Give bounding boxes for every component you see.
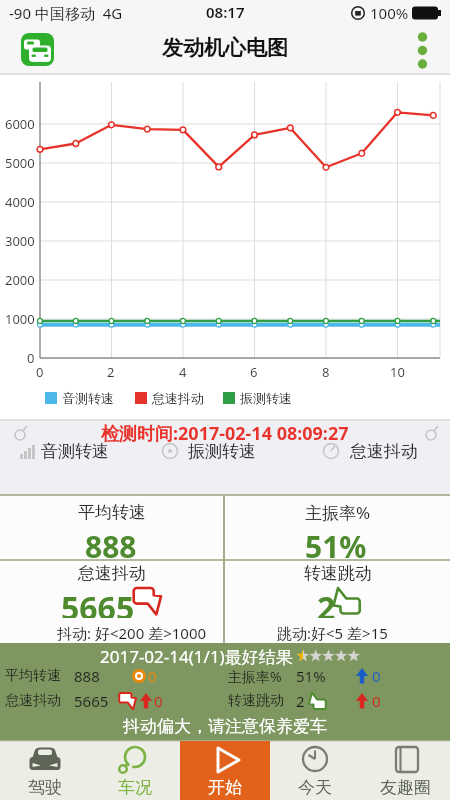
button[interactable]: 今天 bbox=[270, 741, 360, 800]
staticText: 抖动: 好<200 差>1000 bbox=[57, 623, 207, 643]
staticText: 发动机心电图 bbox=[162, 35, 288, 61]
staticText: 100% bbox=[370, 3, 409, 23]
staticText: 0 bbox=[372, 691, 381, 711]
staticText: 今天 bbox=[298, 777, 332, 798]
staticText: 5000 bbox=[5, 154, 35, 172]
staticText: 2 bbox=[107, 363, 115, 381]
staticText: 2017-02-14(1/1)最好结果 bbox=[100, 645, 293, 668]
staticText: 3000 bbox=[5, 232, 35, 250]
staticText: 2000 bbox=[5, 271, 35, 289]
staticText: 平均转速 bbox=[5, 667, 61, 685]
staticText: 跳动:好<5 差>15 bbox=[277, 623, 388, 643]
staticText: 08:17 bbox=[206, 2, 245, 22]
staticText: 6 bbox=[250, 363, 258, 381]
staticText: 转速跳动 bbox=[228, 692, 284, 710]
staticText: 开始 bbox=[208, 777, 242, 798]
staticText: 主振率% bbox=[228, 667, 282, 686]
staticText: 振测转速 bbox=[240, 390, 292, 406]
staticText: 5665 bbox=[74, 691, 109, 711]
staticText: 平均转速 bbox=[78, 502, 146, 523]
staticText: 0 bbox=[154, 691, 163, 711]
staticText: 4 bbox=[179, 363, 187, 381]
staticText: 2 bbox=[296, 691, 305, 711]
staticText: 4000 bbox=[5, 193, 35, 211]
staticText: 10 bbox=[390, 363, 405, 381]
button[interactable]: 驾驶 bbox=[0, 741, 90, 800]
staticText: 6000 bbox=[5, 115, 35, 133]
staticText: 51% bbox=[305, 526, 367, 558]
staticText: 888 bbox=[85, 526, 137, 558]
button[interactable]: 开始 bbox=[180, 741, 270, 800]
staticText: 0 bbox=[372, 666, 381, 686]
button[interactable]: 友趣圈 bbox=[360, 741, 450, 800]
staticText: 0 bbox=[27, 349, 35, 367]
staticText: 8 bbox=[322, 363, 330, 381]
staticText: 0 bbox=[148, 666, 157, 686]
staticText: 888 bbox=[74, 666, 100, 686]
button[interactable] bbox=[160, 438, 270, 464]
staticText: 0 bbox=[36, 363, 44, 381]
staticText: 友趣圈 bbox=[380, 777, 431, 798]
staticText: 主振率% bbox=[305, 501, 371, 524]
staticText: 转速跳动 bbox=[304, 563, 372, 584]
button[interactable] bbox=[406, 28, 440, 72]
staticText: 驾驶 bbox=[28, 777, 62, 798]
staticText: 音测转速 bbox=[41, 441, 109, 462]
staticText: 振测转速 bbox=[188, 441, 256, 462]
staticText: 怠速抖动 bbox=[78, 563, 146, 584]
staticText: 怠速抖动 bbox=[152, 390, 204, 406]
button[interactable] bbox=[320, 438, 430, 464]
button[interactable] bbox=[16, 438, 114, 464]
staticText: 怠速抖动 bbox=[5, 692, 61, 710]
staticText: 检测时间:2017-02-14 08:09:27 bbox=[101, 421, 349, 446]
staticText: 抖动偏大，请注意保养爱车 bbox=[123, 716, 327, 737]
staticText: 5665 bbox=[61, 586, 135, 618]
staticText: 1000 bbox=[5, 310, 35, 328]
staticText: 音测转速 bbox=[62, 390, 114, 406]
staticText: 怠速抖动 bbox=[350, 441, 418, 462]
staticText: -90 中国移动 4G bbox=[9, 3, 123, 23]
staticText: 2 bbox=[317, 586, 336, 618]
staticText: 车况 bbox=[118, 777, 152, 798]
staticText: 51% bbox=[296, 666, 326, 686]
button[interactable]: 车况 bbox=[90, 741, 180, 800]
button[interactable] bbox=[14, 31, 52, 69]
